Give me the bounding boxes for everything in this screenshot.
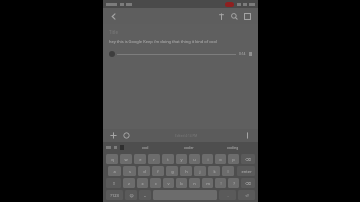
button[interactable]: d: [138, 166, 150, 176]
button[interactable]: u: [189, 154, 200, 164]
button[interactable]: Delete: [241, 178, 255, 188]
staticText: cooling: [227, 145, 239, 149]
button[interactable]: x: [137, 178, 148, 188]
staticText: d: [143, 169, 146, 174]
button[interactable]: c: [150, 178, 161, 188]
staticText: a: [113, 169, 116, 174]
button[interactable]: Return: [238, 190, 255, 200]
staticText: h: [185, 169, 188, 174]
button[interactable]: w: [120, 154, 132, 164]
staticText: g: [171, 169, 174, 174]
button[interactable]: Shift: [106, 178, 121, 188]
button[interactable]: !: [215, 178, 226, 188]
staticText: k: [213, 169, 216, 174]
button[interactable]: cool: [124, 142, 167, 152]
button[interactable]: Emoji: [125, 190, 137, 200]
button[interactable]: More options: [241, 10, 254, 23]
staticText: enter: [241, 169, 252, 174]
button[interactable]: o: [215, 154, 226, 164]
staticText: p: [232, 157, 235, 162]
button[interactable]: b: [176, 178, 187, 188]
button[interactable]: ?123: [106, 190, 123, 200]
button[interactable]: h: [180, 166, 192, 176]
button[interactable]: a: [108, 166, 121, 176]
staticText: u: [193, 157, 196, 162]
button[interactable]: q: [106, 154, 118, 164]
staticText: .: [227, 193, 229, 198]
staticText: j: [199, 169, 201, 174]
button[interactable]: j: [194, 166, 206, 176]
button[interactable]: k: [208, 166, 220, 176]
button[interactable]: t: [162, 154, 174, 164]
staticText: ⌄: [143, 193, 147, 198]
staticText: f: [157, 169, 159, 174]
staticText: t: [167, 157, 169, 162]
button[interactable]: r: [148, 154, 160, 164]
button[interactable]: z: [123, 178, 135, 188]
staticText: n: [193, 181, 196, 186]
staticText: ⇧: [112, 181, 116, 186]
staticText: ⏎: [245, 193, 249, 198]
staticText: x: [141, 181, 144, 186]
staticText: v: [167, 181, 170, 186]
staticText: o: [219, 157, 222, 162]
button[interactable]: Backspace: [241, 154, 255, 164]
staticText: r: [153, 157, 155, 162]
button[interactable]: Add: [107, 129, 120, 142]
button[interactable]: p: [228, 154, 239, 164]
staticText: hey this is Google Keep i'm doing that t…: [109, 39, 217, 44]
staticText: ☺: [129, 193, 134, 198]
staticText: l: [227, 169, 229, 174]
button[interactable]: n: [189, 178, 200, 188]
staticText: 0:14: [239, 52, 246, 56]
button[interactable]: i: [202, 154, 213, 164]
staticText: cool: [142, 145, 149, 149]
button[interactable]: Back: [107, 10, 120, 23]
button[interactable]: v: [163, 178, 174, 188]
staticText: b: [180, 181, 183, 186]
button[interactable]: f: [152, 166, 164, 176]
staticText: s: [129, 169, 131, 174]
staticText: i: [207, 157, 209, 162]
button[interactable]: Voice input: [139, 190, 151, 200]
button[interactable]: enter: [237, 166, 255, 176]
staticText: m: [206, 181, 210, 186]
button[interactable]: e: [134, 154, 146, 164]
button[interactable]: cooler: [167, 142, 211, 152]
button[interactable]: Change color: [120, 129, 133, 142]
button[interactable]: cooling: [211, 142, 255, 152]
button[interactable]: Search: [228, 10, 241, 23]
staticText: !: [220, 181, 222, 186]
staticText: ?123: [110, 193, 119, 198]
staticText: Edited 4:14 PM: [175, 134, 198, 138]
staticText: e: [139, 157, 142, 162]
staticText: y: [180, 157, 183, 162]
button[interactable]: More: [241, 129, 254, 142]
button[interactable]: m: [202, 178, 213, 188]
button[interactable]: Play recording: [109, 49, 252, 59]
staticText: ⌫: [245, 157, 251, 162]
staticText: w: [124, 157, 128, 162]
staticText: Title: [109, 29, 118, 35]
button[interactable]: Pin: [215, 10, 228, 23]
staticText: z: [128, 181, 130, 186]
staticText: cooler: [184, 145, 194, 149]
button[interactable]: Play recording: [109, 51, 115, 57]
button[interactable]: y: [176, 154, 187, 164]
button[interactable]: ?: [228, 178, 239, 188]
button[interactable]: l: [222, 166, 234, 176]
button[interactable]: s: [123, 166, 136, 176]
staticText: ⌫: [245, 181, 251, 186]
button[interactable]: g: [166, 166, 178, 176]
staticText: q: [111, 157, 114, 162]
staticText: c: [155, 181, 157, 186]
staticText: ?: [233, 181, 235, 186]
